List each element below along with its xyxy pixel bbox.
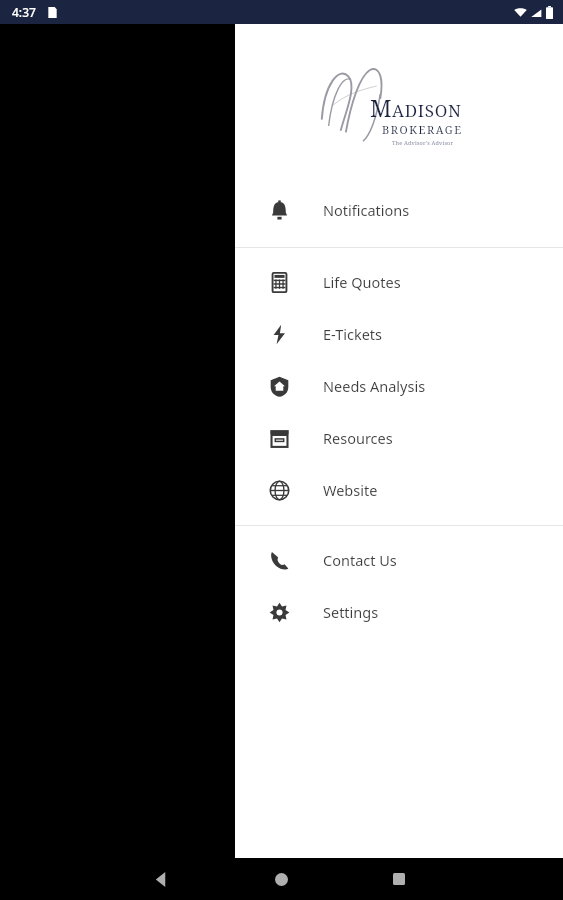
- button[interactable]: Life Quotes: [235, 256, 563, 308]
- staticText: Needs Analysis: [323, 376, 426, 396]
- other: Recents: [393, 873, 405, 885]
- staticText: Settings: [323, 602, 379, 622]
- button[interactable]: E-Tickets: [235, 308, 563, 360]
- button[interactable]: Website: [235, 464, 563, 516]
- staticText: ADISON: [392, 99, 462, 122]
- staticText: BROKERAGE: [382, 122, 463, 137]
- staticText: E-Tickets: [323, 324, 383, 344]
- staticText: Resources: [323, 428, 393, 448]
- other: Back: [154, 872, 169, 887]
- staticText: The Advisor's Advisor: [392, 139, 454, 146]
- button[interactable]: Needs Analysis: [235, 360, 563, 412]
- other: Home: [275, 873, 288, 886]
- staticText: Contact Us: [323, 550, 397, 570]
- button[interactable]: Notifications: [235, 184, 563, 236]
- staticText: Website: [323, 480, 378, 500]
- staticText: M: [370, 92, 392, 123]
- button[interactable]: Settings: [235, 586, 563, 638]
- staticText: Life Quotes: [323, 272, 401, 292]
- button[interactable]: Resources: [235, 412, 563, 464]
- button[interactable]: Contact Us: [235, 534, 563, 586]
- staticText: 4:37: [12, 4, 36, 20]
- staticText: Notifications: [323, 200, 410, 220]
